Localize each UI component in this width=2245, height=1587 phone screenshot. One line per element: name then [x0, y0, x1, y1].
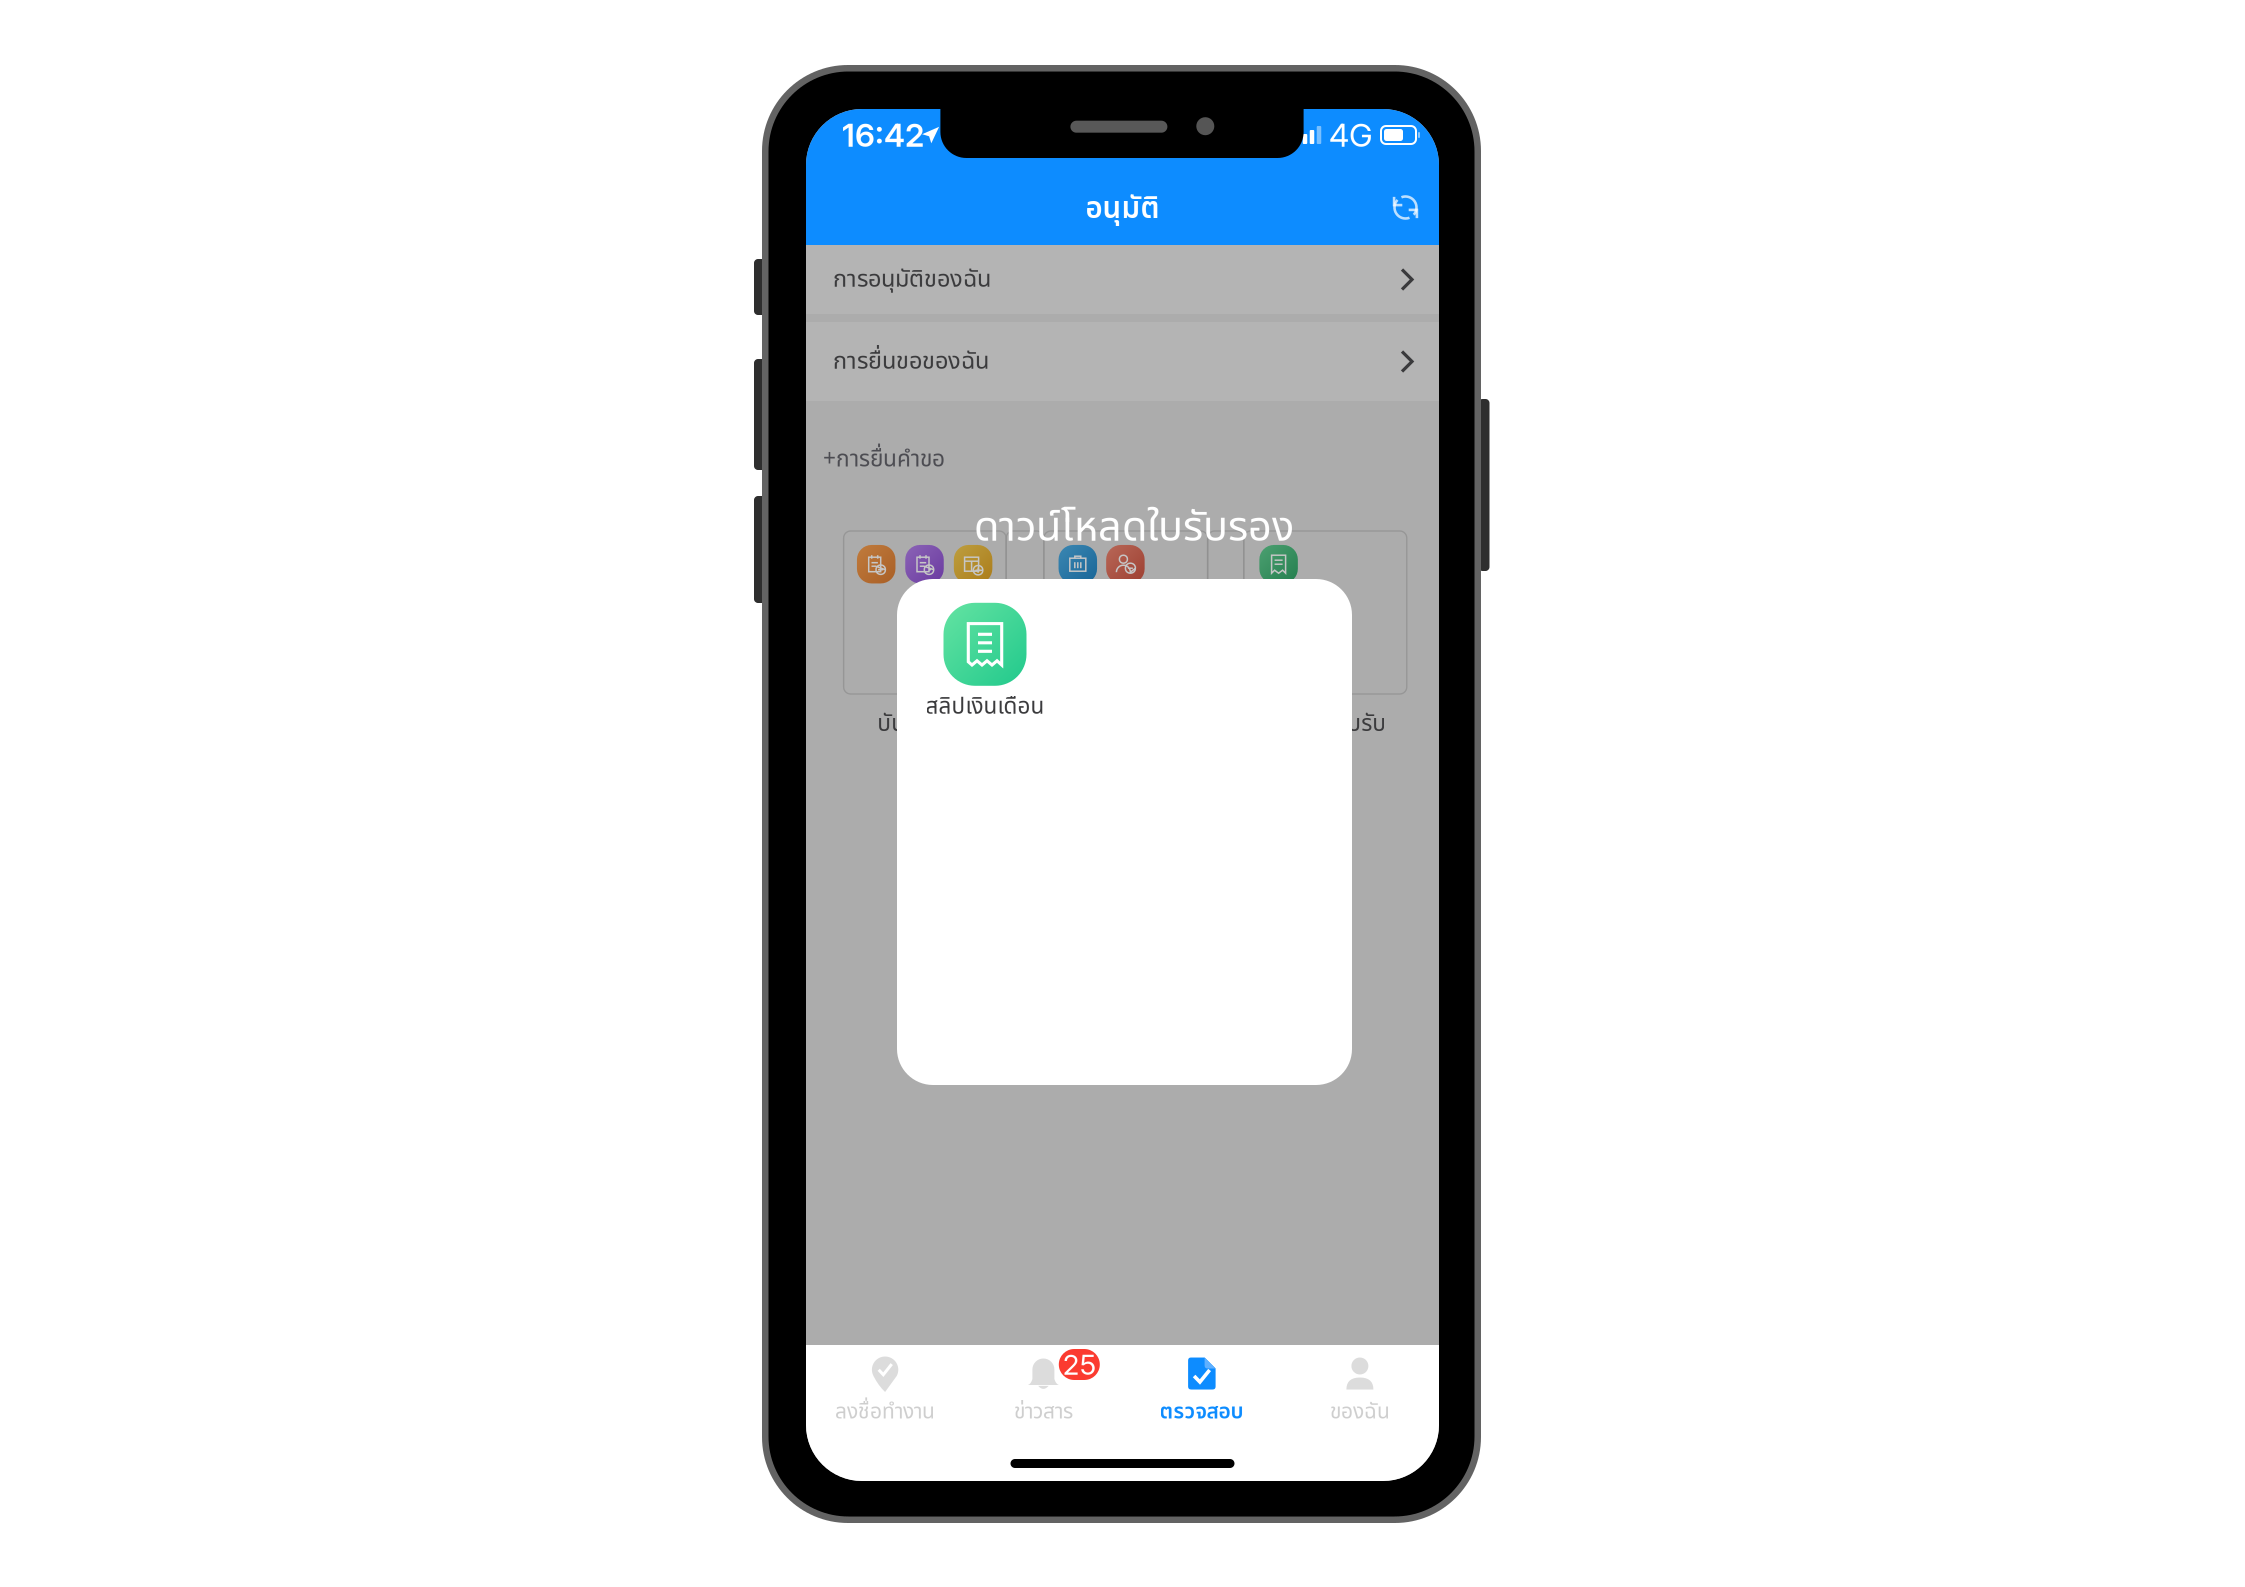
staticText: 4G: [1329, 116, 1373, 154]
button[interactable]: 25: [964, 1345, 1122, 1441]
staticText: การยื่นขอของฉัน: [833, 344, 989, 379]
button[interactable]: ตรวจสอบ: [1123, 1345, 1281, 1441]
staticText: +การยื่นคำขอ: [823, 442, 945, 477]
staticText: สลิปเงินเดือน: [925, 690, 1044, 724]
staticText: การอนุมัติของฉัน: [833, 262, 991, 297]
button[interactable]: การอนุมัติของฉัน: [806, 245, 1439, 314]
staticText: ใบรับ: [1341, 707, 1386, 741]
staticText: บันทึกเวลา: [877, 707, 972, 741]
staticText: 25: [1063, 1348, 1096, 1381]
staticText: ลงชื่อทำงาน: [835, 1396, 935, 1428]
staticText: 16:42: [842, 116, 924, 154]
staticText: ดาวน์โหลดใบรับรอง: [974, 497, 1294, 559]
button[interactable]: ของฉัน: [1281, 1345, 1439, 1441]
button[interactable]: Refresh: [1379, 181, 1431, 233]
staticText: ตรวจสอบ: [1160, 1396, 1244, 1428]
staticText: ข่าวสาร: [1014, 1396, 1073, 1428]
button[interactable]: ลงชื่อทำงาน: [806, 1345, 964, 1441]
staticText: อนุมัติ: [1085, 187, 1159, 231]
staticText: ของฉัน: [1330, 1396, 1390, 1428]
button[interactable]: การยื่นขอของฉัน: [806, 322, 1439, 401]
